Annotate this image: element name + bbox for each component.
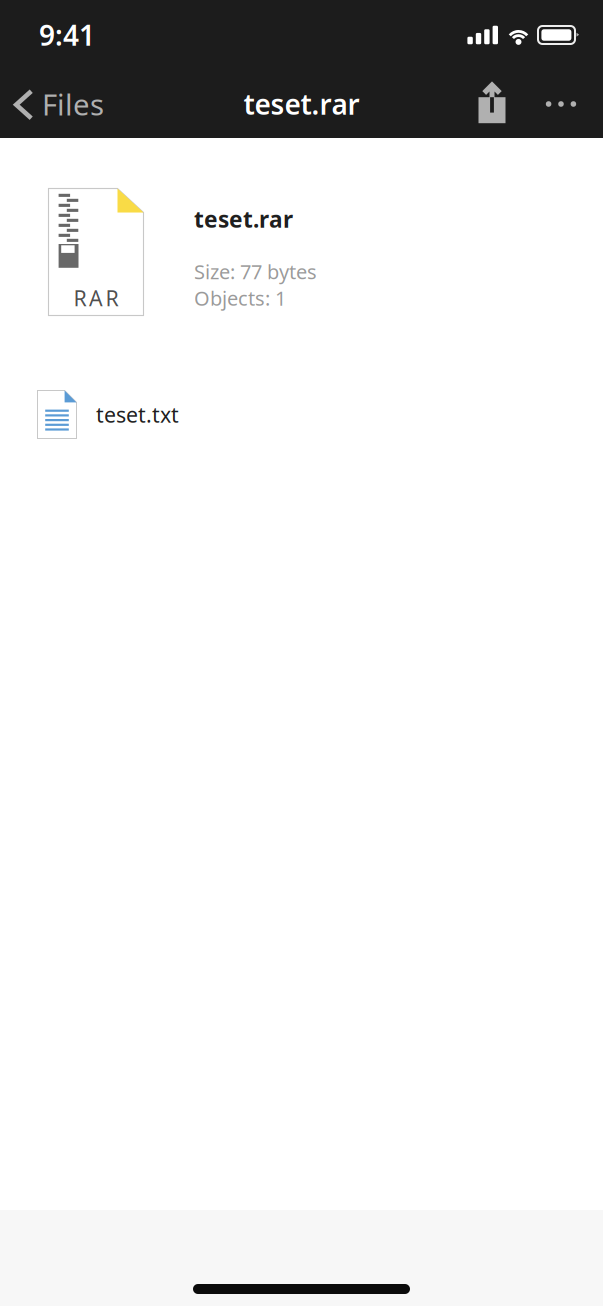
staticText: Objects: 1 <box>194 285 286 311</box>
staticText: 9:41 <box>39 16 95 54</box>
staticText: R <box>105 284 118 312</box>
button[interactable]: Share <box>467 70 517 138</box>
staticText: Size: 77 bytes <box>194 258 317 285</box>
staticText: Files <box>42 84 104 123</box>
button[interactable]: More <box>535 70 587 138</box>
staticText: teset.txt <box>96 400 179 429</box>
button[interactable]: Files <box>0 70 112 138</box>
staticText: teset.rar <box>194 204 293 234</box>
staticText: R <box>74 284 87 312</box>
staticText: teset.rar <box>243 85 359 123</box>
button[interactable]: teset.txt <box>0 316 603 439</box>
staticText: A <box>89 284 103 312</box>
